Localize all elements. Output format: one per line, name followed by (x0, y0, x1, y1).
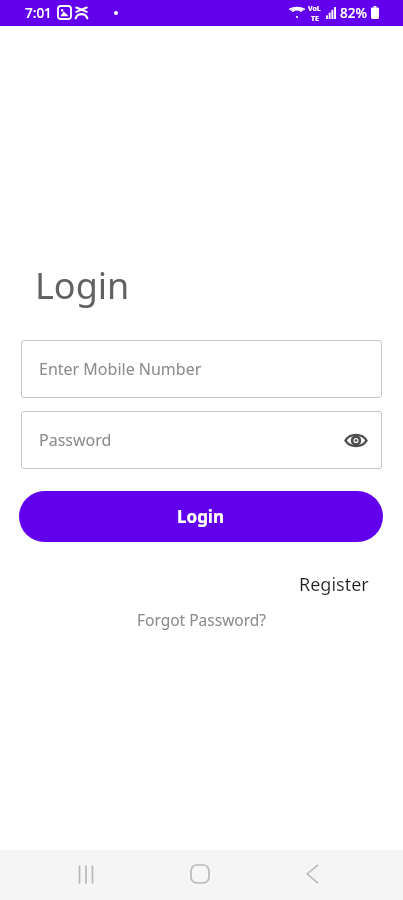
button[interactable]: Recent apps (66, 854, 106, 894)
button[interactable]: Forgot Password? (129, 604, 275, 635)
staticText: VoL (308, 4, 321, 14)
staticText: TE (311, 14, 319, 24)
staticText: Password (39, 429, 112, 451)
button[interactable]: Show password (340, 424, 372, 456)
button[interactable]: Login (19, 491, 383, 542)
staticText: Login (35, 261, 130, 310)
button[interactable]: Register (291, 567, 377, 602)
button[interactable]: Password (21, 411, 382, 469)
button[interactable]: Home (180, 854, 220, 894)
button[interactable]: Enter Mobile Number (21, 340, 382, 398)
staticText: Forgot Password? (137, 609, 267, 630)
button[interactable]: Back (292, 854, 332, 894)
staticText: Enter Mobile Number (39, 358, 202, 380)
staticText: 7:01 (25, 4, 52, 22)
staticText: Login (177, 505, 225, 528)
staticText: 82% (340, 4, 367, 22)
staticText: Register (299, 572, 369, 597)
